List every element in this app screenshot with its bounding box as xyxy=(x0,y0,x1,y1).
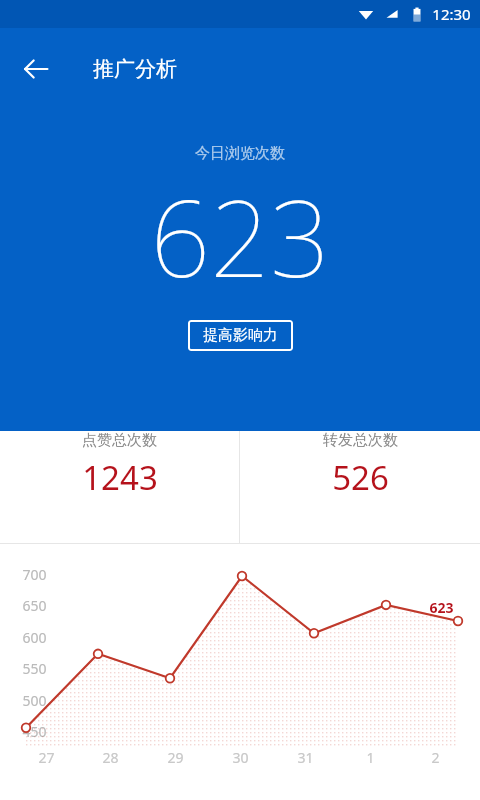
staticText: 650 xyxy=(22,596,47,615)
staticText: 1 xyxy=(366,748,375,767)
staticText: 31 xyxy=(297,748,314,767)
staticText: 点赞总次数 xyxy=(82,431,157,450)
staticText: 1243 xyxy=(82,455,158,500)
staticText: 提高影响力 xyxy=(203,326,278,345)
staticText: 623 xyxy=(429,598,454,617)
staticText: 30 xyxy=(232,748,249,767)
staticText: 500 xyxy=(22,691,47,710)
staticText: 550 xyxy=(22,659,47,678)
staticText: 12:30 xyxy=(432,4,471,24)
staticText: 转发总次数 xyxy=(323,431,398,450)
staticText: 推广分析 xyxy=(93,56,177,82)
staticText: 29 xyxy=(167,748,184,767)
staticText: 2 xyxy=(431,748,440,767)
staticText: 600 xyxy=(22,628,47,647)
staticText: 28 xyxy=(102,748,119,767)
staticText: 526 xyxy=(332,455,389,500)
button[interactable]: 提高影响力 xyxy=(188,320,293,351)
button[interactable]: 点赞总次数 xyxy=(0,431,239,500)
staticText: 27 xyxy=(38,748,55,767)
staticText: 今日浏览次数 xyxy=(195,144,285,163)
button[interactable]: Back xyxy=(14,47,58,91)
button[interactable]: 转发总次数 xyxy=(240,431,480,500)
staticText: 450 xyxy=(22,722,47,741)
staticText: 700 xyxy=(22,565,47,584)
staticText: 623 xyxy=(150,165,330,308)
